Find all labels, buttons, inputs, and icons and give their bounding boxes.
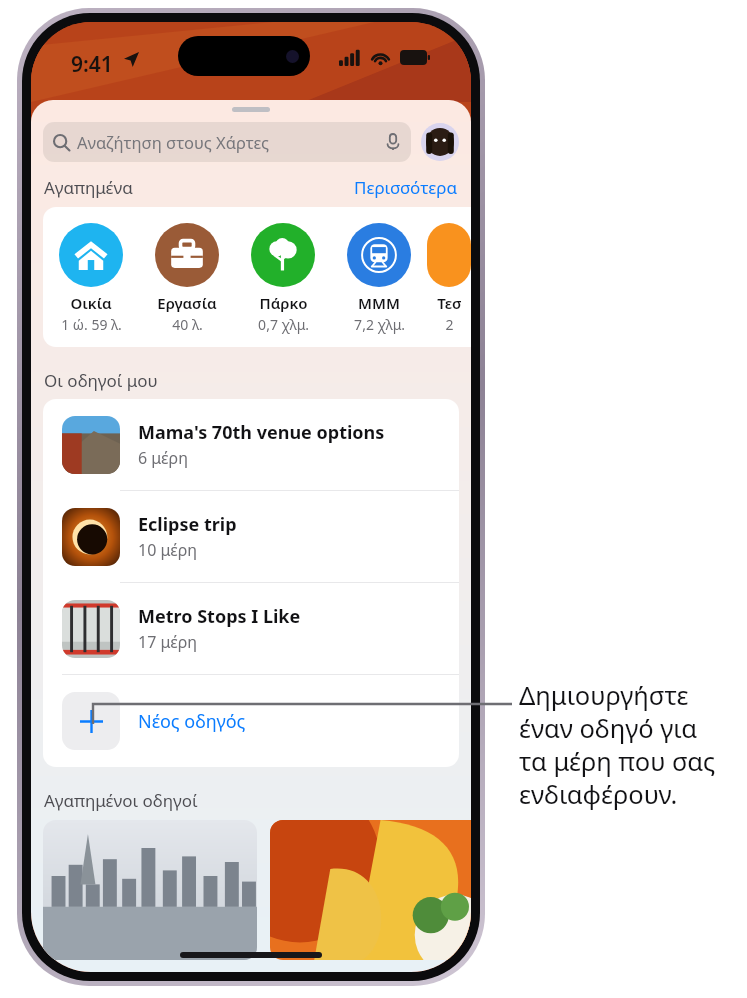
button[interactable]: Περισσότερα [354,176,458,199]
staticText: Οικία [70,293,112,313]
staticText: 1 ώ. 59 λ. [61,315,122,334]
button[interactable]: Οικία [43,223,139,334]
button[interactable]: Πάρκο [235,223,331,334]
staticText: Περισσότερα [354,176,458,199]
button[interactable]: Αναζήτηση στους Χάρτες [43,122,411,162]
staticText: ΜΜΜ [358,293,400,313]
staticText: Metro Stops I Like [138,604,301,629]
button[interactable]: Mama's 70th venue options [43,399,459,490]
staticText: 17 μέρη [138,631,198,653]
staticText: 6 μέρη [138,447,188,469]
button[interactable]: Profile [421,123,459,161]
staticText: Eclipse trip [138,512,237,537]
staticText: Δημιουργήστε έναν οδηγό για τα μέρη που … [519,678,716,811]
button[interactable]: Νέος οδηγός [43,675,459,767]
staticText: Αγαπημένα [44,176,133,199]
staticText: 0,7 χλμ. [258,315,309,334]
staticText: Πάρκο [259,293,308,313]
button[interactable]: ΜΜΜ [331,223,427,334]
staticText: Mama's 70th venue options [138,420,385,445]
staticText: Τεσ [437,293,462,313]
staticText: Αναζήτηση στους Χάρτες [77,131,270,153]
button[interactable]: Eclipse trip [43,491,459,582]
staticText: 10 μέρη [138,539,198,561]
staticText: 40 λ. [172,315,203,334]
staticText: 2 [445,315,454,334]
staticText: Αγαπημένοι οδηγοί [44,789,198,812]
button[interactable]: Εργασία [139,223,235,334]
button[interactable]: Voice search [385,134,401,150]
staticText: 9:41 [71,50,113,79]
staticText: Οι οδηγοί μου [44,369,158,392]
button[interactable] [43,820,257,960]
staticText: Εργασία [157,293,217,313]
button[interactable]: Τεσ [427,223,471,334]
staticText: Νέος οδηγός [138,709,246,734]
button[interactable] [270,820,471,960]
staticText: 7,2 χλμ. [354,315,405,334]
button[interactable]: Metro Stops I Like [43,583,459,674]
